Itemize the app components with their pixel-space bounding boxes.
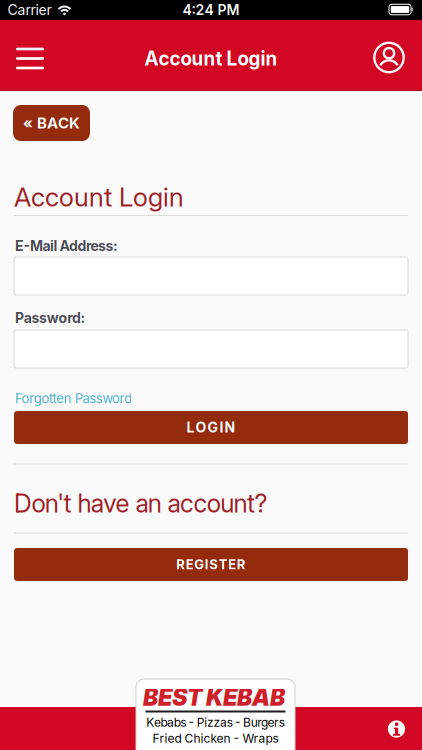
- button[interactable]: Account: [367, 37, 411, 77]
- staticText: « BACK: [23, 114, 80, 132]
- staticText: Don't have an account?: [14, 489, 267, 518]
- button[interactable]: Info: [387, 720, 405, 738]
- staticText: Kebabs - Pizzas - Burgers: [146, 715, 285, 730]
- staticText: Account Login: [14, 182, 184, 212]
- staticText: BEST KEBAB: [143, 684, 285, 711]
- staticText: LOGIN: [186, 419, 235, 436]
- staticText: 4:24 PM: [182, 2, 239, 18]
- button[interactable]: LOGIN: [14, 411, 408, 444]
- staticText: Forgotten Password: [15, 391, 132, 406]
- staticText: Carrier: [7, 2, 51, 18]
- button[interactable]: E-Mail Address: [14, 257, 408, 295]
- button[interactable]: Menu: [8, 38, 52, 78]
- button[interactable]: Password: [14, 330, 408, 368]
- staticText: Password:: [15, 310, 86, 326]
- staticText: REGISTER: [176, 557, 246, 572]
- button[interactable]: Forgotten Password: [15, 391, 407, 406]
- button[interactable]: REGISTER: [14, 548, 408, 581]
- staticText: E-Mail Address:: [15, 238, 118, 254]
- staticText: Fried Chicken - Wraps: [152, 731, 278, 746]
- staticText: Account Login: [144, 47, 277, 70]
- button[interactable]: « BACK: [13, 105, 90, 141]
